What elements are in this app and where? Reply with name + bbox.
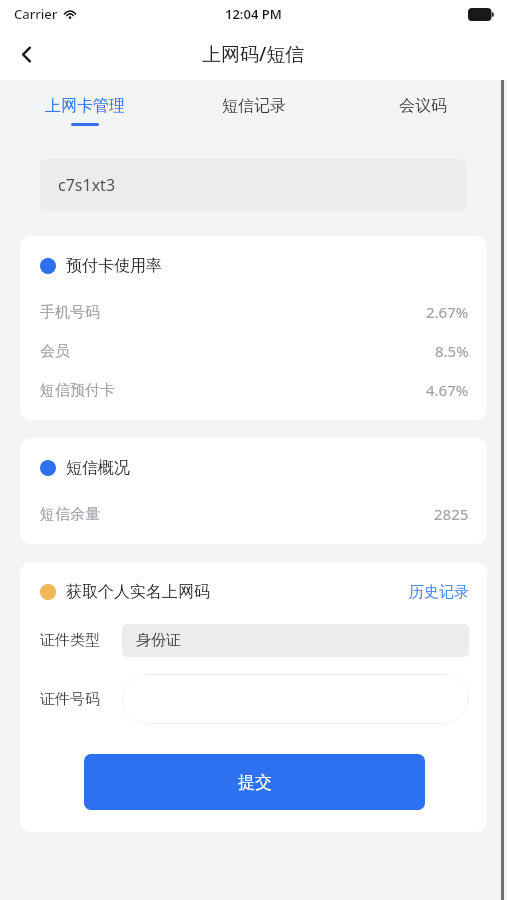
- staticText: 证件号码: [40, 690, 100, 709]
- staticText: 预付卡使用率: [66, 256, 162, 276]
- staticText: 短信记录: [222, 96, 286, 116]
- staticText: 2825: [434, 504, 469, 524]
- staticText: 12:04 PM: [225, 5, 282, 23]
- button[interactable]: 历史记录: [409, 583, 469, 602]
- button[interactable]: Back: [0, 28, 52, 80]
- staticText: 提交: [238, 772, 272, 793]
- button[interactable]: c7s1xt3: [40, 159, 467, 211]
- button[interactable]: 会议码: [338, 80, 507, 142]
- button[interactable]: 提交: [84, 754, 425, 810]
- staticText: 4.67%: [426, 380, 469, 400]
- staticText: c7s1xt3: [58, 174, 116, 196]
- staticText: 短信预付卡: [40, 381, 115, 400]
- staticText: 上网卡管理: [45, 96, 125, 116]
- button[interactable]: 身份证: [122, 624, 469, 657]
- staticText: Carrier: [14, 5, 58, 23]
- button[interactable]: 短信记录: [169, 80, 338, 142]
- button[interactable]: 上网卡管理: [0, 80, 169, 142]
- staticText: 历史记录: [409, 583, 469, 602]
- staticText: 上网码/短信: [202, 41, 305, 67]
- staticText: 2.67%: [426, 302, 469, 322]
- staticText: 短信余量: [40, 505, 100, 524]
- staticText: 身份证: [136, 631, 181, 650]
- staticText: 手机号码: [40, 303, 100, 322]
- staticText: 8.5%: [435, 341, 469, 361]
- staticText: 短信概况: [66, 458, 130, 478]
- staticText: 会议码: [399, 96, 447, 116]
- staticText: 证件类型: [40, 631, 100, 650]
- staticText: 获取个人实名上网码: [66, 582, 210, 602]
- staticText: 会员: [40, 342, 70, 361]
